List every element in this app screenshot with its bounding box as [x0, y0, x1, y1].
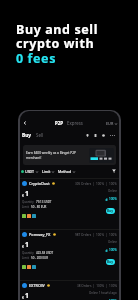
staticText: USDT — [25, 169, 35, 174]
staticText: 1 — [25, 291, 29, 300]
button[interactable]: Orders — [93, 133, 98, 138]
button[interactable]: Method — [58, 169, 75, 174]
staticText: € — [22, 193, 25, 198]
button[interactable]: P2P — [55, 120, 63, 126]
staticText: 0 fees — [16, 50, 57, 67]
staticText: Buy — [22, 132, 32, 139]
staticText: 50 - 200 EUR — [31, 256, 48, 260]
button[interactable]: Buy — [106, 208, 115, 214]
staticText: 50 - 80 EUR — [31, 205, 47, 209]
button[interactable]: Notifications — [85, 133, 90, 138]
button[interactable]: More options — [109, 132, 115, 138]
staticText: Buy — [107, 260, 114, 264]
staticText: Buy and sell — [16, 21, 98, 38]
button[interactable]: Support — [101, 133, 106, 138]
staticText: Express — [67, 120, 83, 126]
staticText: P2P — [55, 120, 63, 126]
staticText: Buy — [107, 209, 114, 213]
staticText: Quantity — [22, 200, 34, 204]
staticText: EXTROW — [29, 283, 45, 288]
staticText: Online — [108, 189, 117, 193]
staticText: Online — [108, 240, 117, 244]
staticText: Online 1 hour(s) ago — [89, 291, 117, 295]
button[interactable]: EXTROW — [20, 281, 119, 300]
button[interactable]: Pomway_FX — [20, 230, 119, 280]
staticText: CryptoDust — [29, 181, 50, 186]
staticText: 987 Orders | 100% | 100% — [75, 233, 117, 237]
button[interactable]: Earn $400 weekly as a Binget P2P — [23, 145, 116, 165]
button[interactable]: CryptoDust — [20, 179, 119, 229]
button[interactable]: Back — [21, 119, 29, 127]
button[interactable]: Express — [67, 120, 83, 126]
staticText: 79.13 USDT — [36, 200, 52, 204]
staticText: 38 Orders | 100% | 100% — [77, 284, 117, 288]
button[interactable]: EUR — [106, 121, 117, 126]
staticText: 1 — [25, 240, 29, 249]
staticText: Pomway_FX — [29, 232, 51, 237]
button[interactable]: Buy — [22, 132, 32, 139]
staticText: Sell — [36, 132, 44, 138]
staticText: crypto with — [16, 35, 95, 52]
staticText: € — [22, 244, 25, 249]
staticText: Earn $400 weekly as a Binget P2P — [26, 151, 76, 155]
button[interactable]: Limit — [42, 169, 54, 174]
staticText: 305 Orders | 100% | 100% — [75, 182, 117, 186]
staticText: € — [22, 295, 25, 300]
button[interactable]: Buy — [106, 259, 115, 265]
staticText: Quantity — [22, 251, 34, 255]
staticText: EUR — [106, 121, 114, 126]
button[interactable]: Filter — [111, 168, 117, 174]
staticText: merchant! — [26, 156, 42, 160]
button[interactable]: USDT — [21, 169, 38, 174]
staticText: 423.58 USDT — [36, 251, 54, 255]
button[interactable]: Sell — [36, 132, 44, 138]
staticText: Limit — [22, 256, 29, 260]
staticText: Method — [58, 169, 72, 174]
staticText: 1 — [25, 189, 29, 198]
staticText: 100% — [109, 299, 117, 300]
staticText: 100% — [109, 248, 117, 252]
staticText: Limit — [42, 169, 51, 174]
staticText: 100% — [109, 197, 117, 201]
staticText: Limit — [22, 205, 29, 209]
